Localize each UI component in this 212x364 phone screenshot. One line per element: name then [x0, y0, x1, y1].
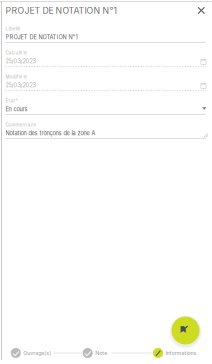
button[interactable]: Ouvrage(s) [11, 348, 51, 358]
button[interactable]: Pick date [201, 59, 206, 65]
staticText: État * [5, 98, 17, 104]
button[interactable]: Informations [153, 348, 196, 358]
staticText: Ouvrage(s) [23, 350, 51, 356]
staticText: Libellé [5, 26, 20, 32]
staticText: Notation des tronçons de la zone A [5, 130, 95, 136]
staticText: Note [95, 350, 107, 356]
staticText: PROJET DE NOTATION N°1 [5, 5, 117, 16]
button[interactable]: Note [83, 348, 107, 358]
staticText: En cours [5, 106, 27, 112]
staticText: Modifié le [5, 74, 27, 80]
button[interactable]: Pick date [201, 83, 206, 89]
staticText: PROJET DE NOTATION N°1 [5, 34, 77, 40]
button[interactable]: Close [194, 3, 208, 18]
staticText: 25/03/2023 [5, 82, 35, 88]
staticText: Calculé le [5, 50, 27, 56]
staticText: Informations [165, 350, 196, 356]
button[interactable]: Choose state [202, 107, 206, 110]
staticText: Commentaire [5, 122, 36, 128]
staticText: 25/03/2023 [5, 58, 35, 64]
button[interactable]: Edit note [168, 313, 202, 347]
